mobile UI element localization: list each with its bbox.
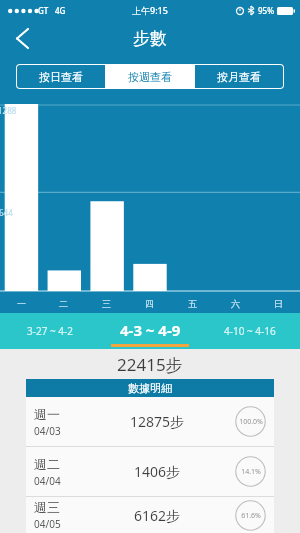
button[interactable]: 3-27 ~ 4-2 [0,313,100,349]
staticText: 04/04 [34,474,61,488]
staticText: 1288 [0,105,17,116]
staticText: 6162步 [134,506,181,525]
staticText: 22415步 [117,353,183,376]
staticText: 100.0% [239,417,263,427]
staticText: 日 [274,298,283,309]
staticText: 95% [258,5,274,16]
staticText: 1406步 [134,462,181,481]
staticText: 數據明細 [128,381,172,395]
staticText: 三 [102,298,111,309]
staticText: 04/03 [34,424,61,438]
staticText: 644 [0,207,13,218]
button[interactable]: 按月查看 [195,65,283,88]
staticText: 上午9:15 [132,4,168,16]
staticText: 按週查看 [128,70,172,84]
staticText: GT [38,5,49,16]
staticText: 3-27 ~ 4-2 [27,324,73,338]
staticText: 14.1% [241,467,261,477]
button[interactable]: 週一 [26,397,274,446]
staticText: 五 [188,298,197,309]
staticText: 按月查看 [217,70,261,84]
button[interactable]: Back [0,20,44,56]
staticText: 4-3 ~ 4-9 [120,320,181,340]
staticText: 12875步 [130,412,185,431]
staticText: 週一 [34,406,60,422]
staticText: 二 [59,298,68,309]
button[interactable]: 按週查看 [106,65,194,88]
staticText: 04/05 [34,517,61,531]
staticText: 按日查看 [39,70,83,84]
button[interactable]: 按日查看 [17,65,105,88]
staticText: 六 [231,298,240,309]
staticText: 一 [17,298,26,309]
staticText: 四 [145,298,154,309]
button[interactable]: 4-10 ~ 4-16 [200,313,300,349]
staticText: 週三 [34,499,60,515]
button[interactable]: 週二 [26,447,274,496]
staticText: 4-10 ~ 4-16 [224,324,276,338]
staticText: 週二 [34,456,60,472]
button[interactable]: 4-3 ~ 4-9 [100,313,200,349]
staticText: 4G [55,5,66,16]
staticText: 步數 [133,28,167,49]
staticText: 61.6% [241,511,261,521]
button[interactable]: 週三 [26,497,274,533]
